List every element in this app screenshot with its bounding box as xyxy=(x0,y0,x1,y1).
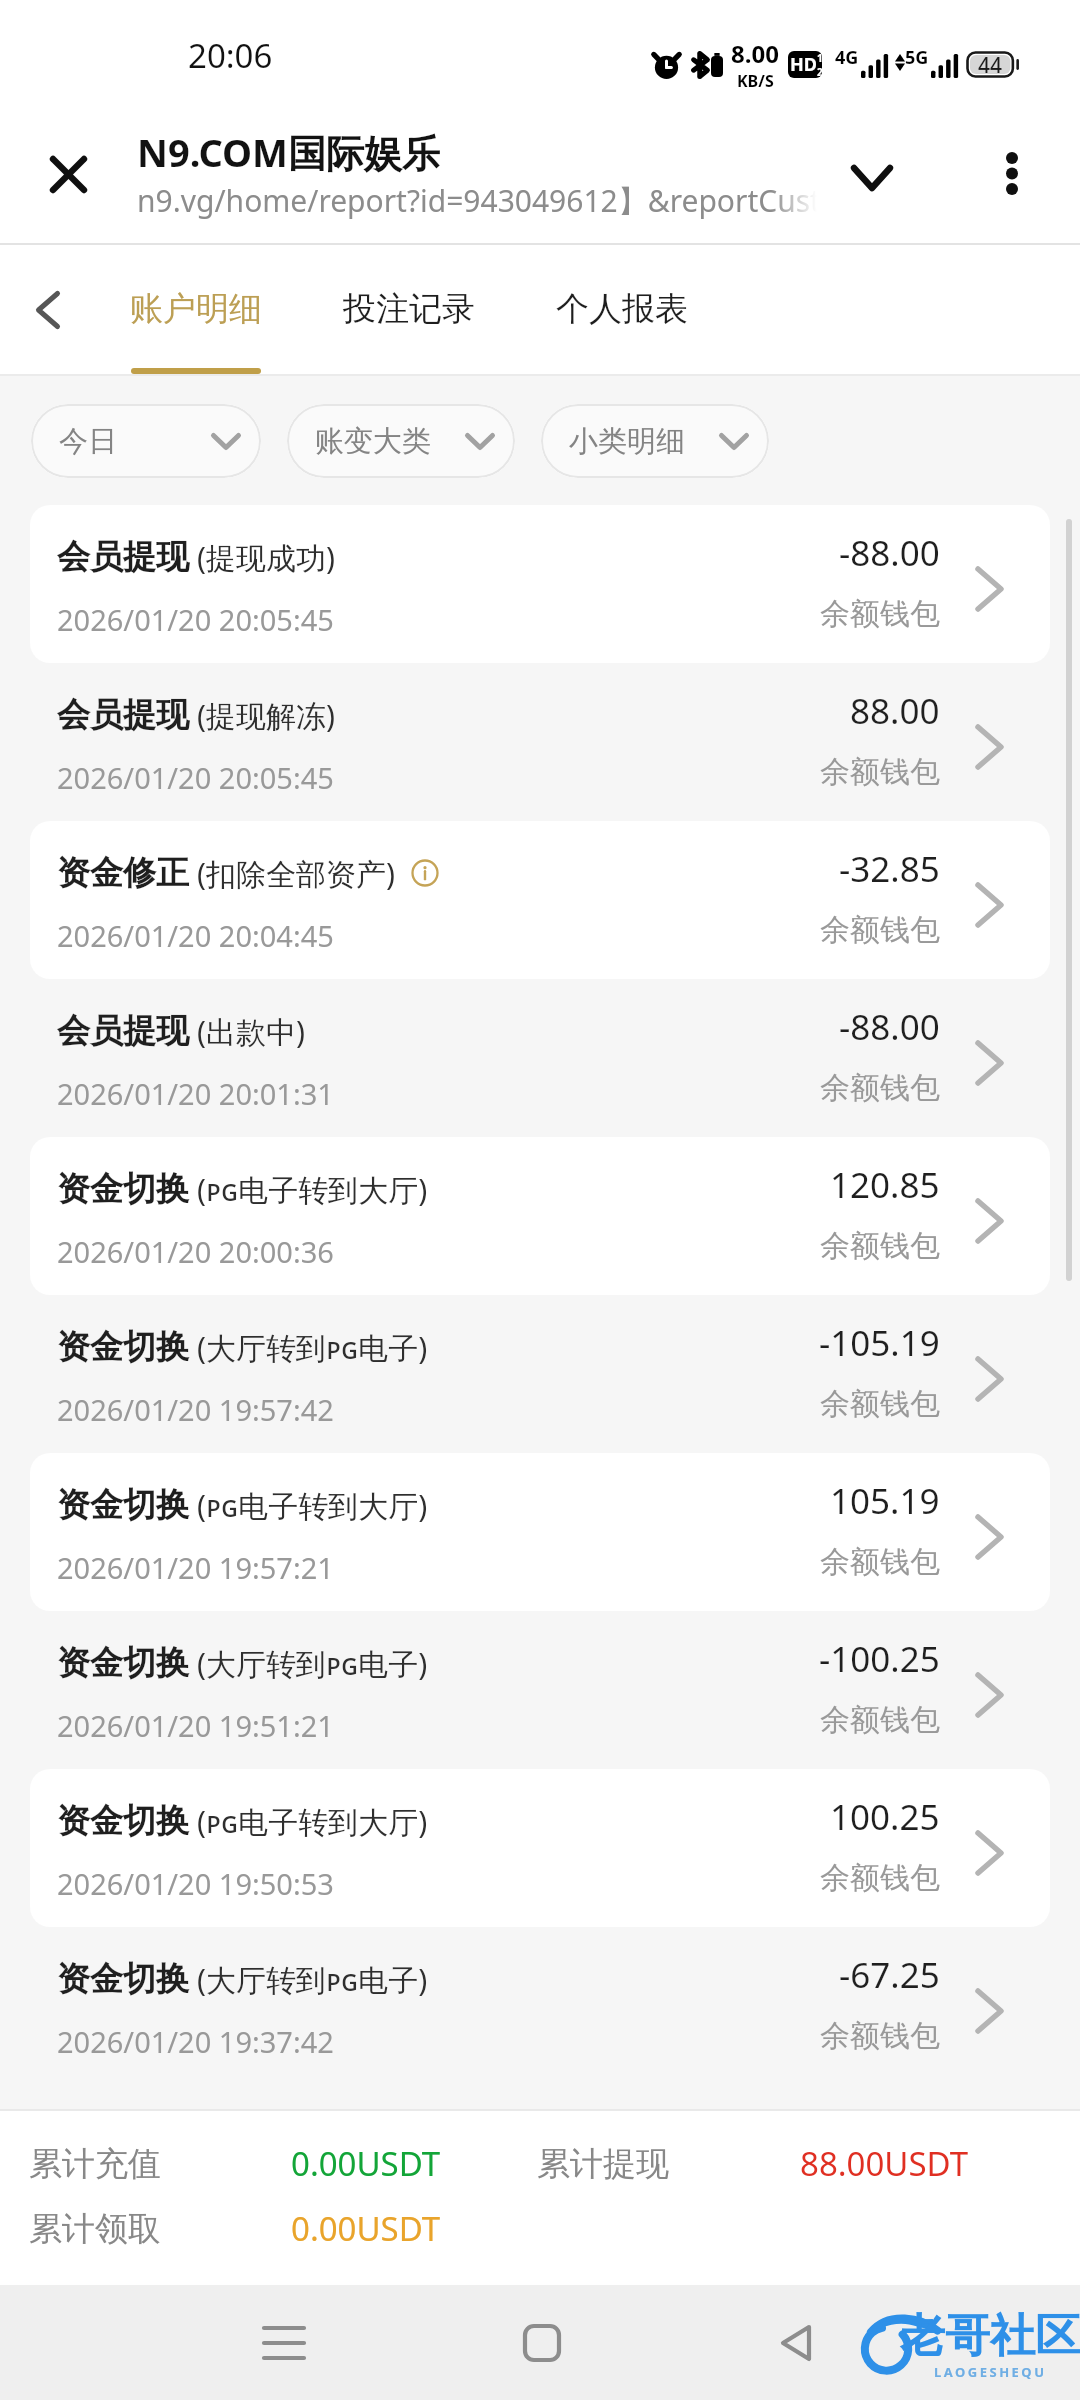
staticText: n9.vg/home/report?id=943049612】&reportCu… xyxy=(137,180,817,221)
button[interactable]: 资金切换 xyxy=(30,1769,1050,1927)
staticText: 余额钱包 xyxy=(820,1701,940,1739)
staticText: 余额钱包 xyxy=(820,1859,940,1897)
staticText: 1 xyxy=(817,51,822,65)
staticText: (提现解冻) xyxy=(197,695,335,736)
staticText: 累计领取 xyxy=(29,2208,291,2250)
staticText: 44 xyxy=(978,51,1003,78)
staticText: N9.COM国际娱乐 xyxy=(137,126,440,178)
button[interactable]: 资金切换 xyxy=(0,1611,1080,1769)
staticText: (出款中) xyxy=(197,1011,305,1052)
button[interactable]: 账变大类 xyxy=(287,404,515,478)
staticText: 2026/01/20 20:00:36 xyxy=(57,1232,334,1271)
staticText: -88.00 xyxy=(839,529,940,577)
button[interactable]: 个人报表 xyxy=(515,245,728,376)
staticText: 2026/01/20 19:50:53 xyxy=(57,1864,334,1903)
staticText: 2026/01/20 19:57:21 xyxy=(57,1548,334,1587)
staticText: -105.19 xyxy=(819,1319,940,1367)
staticText: 会员提现 xyxy=(57,1010,189,1052)
staticText: (ᴘɢ电子转到大厅) xyxy=(197,1485,428,1526)
staticText: 2 xyxy=(817,65,822,78)
staticText: 资金修正 xyxy=(57,852,189,894)
button[interactable]: 资金切换 xyxy=(30,1453,1050,1611)
button[interactable]: 会员提现 xyxy=(30,505,1050,663)
button[interactable]: Expand address bar xyxy=(817,112,927,245)
staticText: 2026/01/20 20:01:31 xyxy=(57,1074,334,1113)
button[interactable]: Back xyxy=(726,2285,866,2400)
button[interactable]: 资金修正 xyxy=(30,821,1050,979)
staticText: (扣除全部资产) xyxy=(197,853,395,894)
staticText: 资金切换 xyxy=(57,1642,189,1684)
staticText: (提现成功) xyxy=(197,537,335,578)
button[interactable]: Home xyxy=(472,2285,612,2400)
staticText: 会员提现 xyxy=(57,536,189,578)
staticText: (大厅转到ᴘɢ电子) xyxy=(197,1643,428,1684)
button[interactable]: 小类明细 xyxy=(541,404,769,478)
button[interactable]: 今日 xyxy=(31,404,261,478)
button[interactable]: 会员提现 xyxy=(0,663,1080,821)
staticText: 余额钱包 xyxy=(820,2017,940,2055)
staticText: 20:06 xyxy=(188,33,273,78)
staticText: 资金切换 xyxy=(57,1958,189,2000)
staticText: 2026/01/20 20:05:45 xyxy=(57,758,334,797)
staticText: 2026/01/20 19:37:42 xyxy=(57,2022,334,2061)
staticText: 余额钱包 xyxy=(820,1543,940,1581)
staticText: 账变大类 xyxy=(315,423,431,460)
staticText: 投注记录 xyxy=(343,288,475,330)
staticText: 余额钱包 xyxy=(820,1385,940,1423)
staticText: 2026/01/20 19:51:21 xyxy=(57,1706,334,1745)
staticText: 2026/01/20 20:04:45 xyxy=(57,916,334,955)
staticText: 88.00 xyxy=(850,687,940,735)
staticText: 8.00 xyxy=(731,37,779,70)
staticText: 2026/01/20 19:57:42 xyxy=(57,1390,334,1429)
staticText: (大厅转到ᴘɢ电子) xyxy=(197,1327,428,1368)
staticText: LAOGESHEQU xyxy=(934,2363,1047,2381)
button[interactable]: 会员提现 xyxy=(0,979,1080,1137)
staticText: 2026/01/20 20:05:45 xyxy=(57,600,334,639)
staticText: (ᴘɢ电子转到大厅) xyxy=(197,1801,428,1842)
staticText: 余额钱包 xyxy=(820,911,940,949)
staticText: 105.19 xyxy=(830,1477,940,1525)
staticText: -88.00 xyxy=(839,1003,940,1051)
staticText: 88.00USDT xyxy=(800,2141,969,2186)
staticText: 余额钱包 xyxy=(820,753,940,791)
button[interactable]: 资金切换 xyxy=(0,1927,1080,2085)
staticText: 今日 xyxy=(59,423,117,460)
staticText: 5G xyxy=(905,45,929,70)
staticText: 个人报表 xyxy=(556,288,688,330)
staticText: HD xyxy=(790,52,817,77)
button[interactable]: Back xyxy=(0,245,95,376)
button[interactable]: Close xyxy=(0,112,137,245)
staticText: (大厅转到ᴘɢ电子) xyxy=(197,1959,428,2000)
button[interactable]: 资金切换 xyxy=(0,1295,1080,1453)
staticText: 资金切换 xyxy=(57,1484,189,1526)
staticText: 累计充值 xyxy=(29,2143,291,2185)
staticText: 4G xyxy=(835,45,859,70)
staticText: 老哥社区 xyxy=(900,2308,1080,2365)
staticText: 100.25 xyxy=(830,1793,940,1841)
staticText: -100.25 xyxy=(819,1635,940,1683)
staticText: 0.00USDT xyxy=(291,2141,537,2186)
button[interactable]: Recents xyxy=(214,2285,354,2400)
staticText: -67.25 xyxy=(839,1951,940,1999)
staticText: 0.00USDT xyxy=(291,2206,441,2251)
staticText: 会员提现 xyxy=(57,694,189,736)
staticText: 小类明细 xyxy=(569,423,685,460)
staticText: 累计提现 xyxy=(537,2143,800,2185)
button[interactable]: 账户明细 xyxy=(89,245,302,376)
staticText: 120.85 xyxy=(830,1161,940,1209)
staticText: KB/S xyxy=(737,70,774,92)
staticText: 资金切换 xyxy=(57,1800,189,1842)
staticText: 账户明细 xyxy=(130,288,262,330)
staticText: 资金切换 xyxy=(57,1168,189,1210)
button[interactable]: 投注记录 xyxy=(302,245,515,376)
staticText: 余额钱包 xyxy=(820,1069,940,1107)
staticText: (ᴘɢ电子转到大厅) xyxy=(197,1169,428,1210)
staticText: 余额钱包 xyxy=(820,1227,940,1265)
staticText: -32.85 xyxy=(839,845,940,893)
button[interactable]: More options xyxy=(944,112,1080,245)
staticText: 资金切换 xyxy=(57,1326,189,1368)
button[interactable]: 资金切换 xyxy=(30,1137,1050,1295)
staticText: 余额钱包 xyxy=(820,595,940,633)
